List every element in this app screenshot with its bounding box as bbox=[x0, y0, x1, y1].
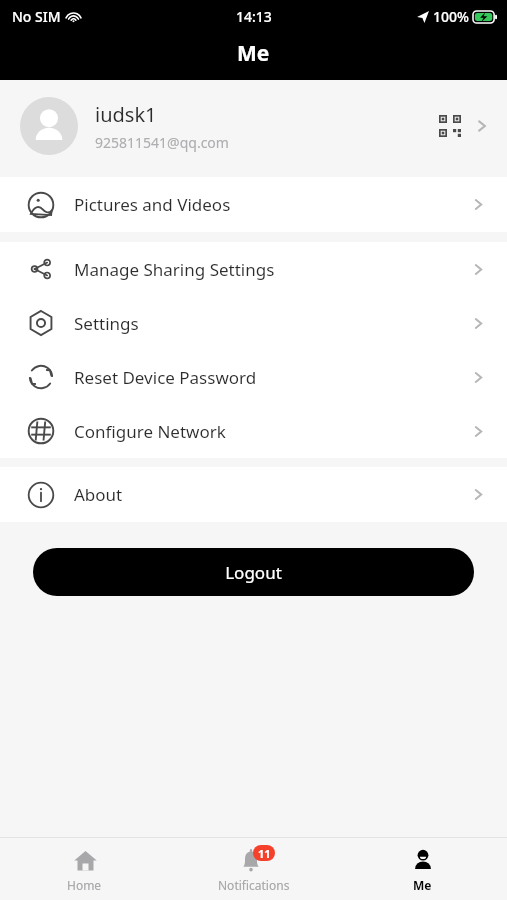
button[interactable]: Show QR code bbox=[433, 109, 467, 143]
staticText: Pictures and Videos bbox=[74, 193, 470, 216]
staticText: 925811541@qq.com bbox=[95, 133, 229, 152]
staticText: Me bbox=[237, 39, 270, 68]
staticText: Settings bbox=[74, 312, 470, 335]
button[interactable]: Reset Device Password bbox=[0, 350, 507, 404]
button[interactable]: Manage Sharing Settings bbox=[0, 242, 507, 296]
staticText: About bbox=[74, 483, 470, 506]
button[interactable]: Logout bbox=[33, 548, 474, 596]
staticText: 100% bbox=[433, 7, 469, 26]
button[interactable]: Settings bbox=[0, 296, 507, 350]
staticText: Me bbox=[413, 877, 432, 893]
button[interactable]: iudsk1 bbox=[0, 80, 507, 172]
button[interactable]: Configure Network bbox=[0, 404, 507, 458]
staticText: Home bbox=[67, 877, 102, 893]
button[interactable]: About bbox=[0, 467, 507, 522]
staticText: 11 bbox=[258, 846, 271, 861]
button[interactable]: Me bbox=[338, 838, 507, 900]
staticText: Manage Sharing Settings bbox=[74, 258, 470, 281]
button[interactable]: Home bbox=[0, 838, 169, 900]
staticText: Logout bbox=[225, 561, 282, 584]
button[interactable]: 11 bbox=[169, 838, 338, 900]
staticText: 14:13 bbox=[236, 7, 272, 26]
staticText: Notifications bbox=[218, 877, 290, 893]
button[interactable]: Pictures and Videos bbox=[0, 177, 507, 232]
staticText: iudsk1 bbox=[95, 101, 157, 128]
staticText: Reset Device Password bbox=[74, 366, 470, 389]
staticText: Configure Network bbox=[74, 420, 470, 443]
staticText: No SIM bbox=[12, 7, 61, 26]
